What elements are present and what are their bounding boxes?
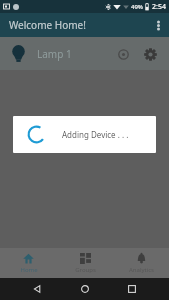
- staticText: Analytics: [129, 266, 154, 274]
- staticText: Groups: [75, 266, 96, 274]
- staticText: Adding Device . . .: [62, 129, 129, 140]
- button[interactable]: Analytics: [113, 248, 169, 278]
- staticText: Welcome Home!: [9, 18, 86, 32]
- staticText: 49%: [131, 3, 143, 11]
- button[interactable]: More options: [147, 13, 169, 37]
- button[interactable]: Timer: [112, 43, 134, 65]
- staticText: Home: [20, 266, 38, 274]
- button[interactable]: Recent apps: [121, 278, 143, 300]
- button[interactable]: Home: [74, 278, 96, 300]
- staticText: 2:54: [152, 2, 166, 12]
- staticText: Lamp 1: [37, 47, 72, 61]
- button[interactable]: Back: [26, 278, 48, 300]
- button[interactable]: Groups: [57, 248, 113, 278]
- button[interactable]: Settings: [139, 43, 161, 65]
- button[interactable]: Home: [0, 248, 57, 278]
